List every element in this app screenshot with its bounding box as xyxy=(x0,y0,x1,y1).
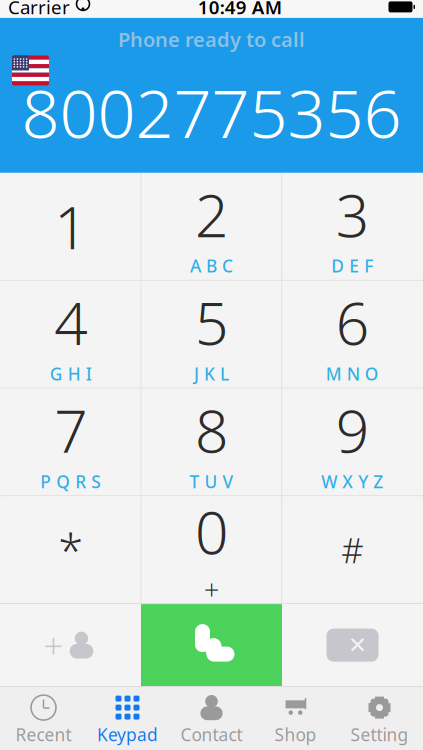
staticText: Phone ready to call xyxy=(118,26,305,52)
button[interactable]: 0 xyxy=(141,496,281,603)
staticText: M N O xyxy=(326,362,379,385)
staticText: Carrier xyxy=(8,0,70,19)
staticText: 2 xyxy=(195,175,228,253)
staticText: # xyxy=(341,527,363,573)
button[interactable]: 7 xyxy=(1,388,141,495)
staticText: J K L xyxy=(194,362,229,385)
staticText: Recent xyxy=(15,723,71,746)
staticText: Shop xyxy=(274,723,316,746)
staticText: * xyxy=(58,520,83,580)
staticText: 7 xyxy=(54,391,87,469)
staticText: 9 xyxy=(336,391,369,469)
button[interactable]: 9 xyxy=(282,388,422,495)
button[interactable]: Contact xyxy=(169,687,253,750)
button[interactable]: * xyxy=(1,496,141,603)
staticText: T U V xyxy=(189,470,233,493)
staticText: Contact xyxy=(180,723,242,746)
button[interactable]: Shop xyxy=(253,687,337,750)
button[interactable]: Add contact xyxy=(0,604,141,686)
button[interactable]: 3 xyxy=(282,173,422,280)
staticText: 6 xyxy=(336,283,369,361)
button[interactable]: Keypad xyxy=(85,687,169,750)
staticText: 3 xyxy=(336,175,369,253)
button[interactable]: # xyxy=(282,496,422,603)
staticText: 4 xyxy=(54,283,87,361)
staticText: D E F xyxy=(331,254,373,277)
button[interactable]: Call xyxy=(141,604,282,686)
staticText: A B C xyxy=(190,254,233,277)
staticText: ✕ xyxy=(348,632,367,658)
staticText: 8 xyxy=(195,391,228,469)
button[interactable]: 2 xyxy=(141,173,281,280)
button[interactable]: Delete xyxy=(282,604,423,686)
staticText: 10:49 AM xyxy=(198,0,282,19)
staticText: G H I xyxy=(50,362,92,385)
staticText: + xyxy=(43,622,63,668)
staticText: P Q R S xyxy=(40,470,101,493)
staticText: Setting xyxy=(350,723,408,746)
button[interactable]: 5 xyxy=(141,281,281,388)
staticText: 5 xyxy=(195,283,228,361)
button[interactable]: 6 xyxy=(282,281,422,388)
button[interactable]: Setting xyxy=(337,687,421,750)
staticText: Keypad xyxy=(97,723,158,746)
button[interactable]: Recent xyxy=(1,687,85,750)
staticText: + xyxy=(204,571,219,607)
button[interactable]: 1 xyxy=(1,173,141,280)
staticText: 0 xyxy=(195,493,228,570)
staticText: 8002775356 xyxy=(21,68,401,156)
staticText: 1 xyxy=(54,187,87,265)
staticText: W X Y Z xyxy=(321,470,383,493)
button[interactable]: 8 xyxy=(141,388,281,495)
button[interactable]: 4 xyxy=(1,281,141,388)
